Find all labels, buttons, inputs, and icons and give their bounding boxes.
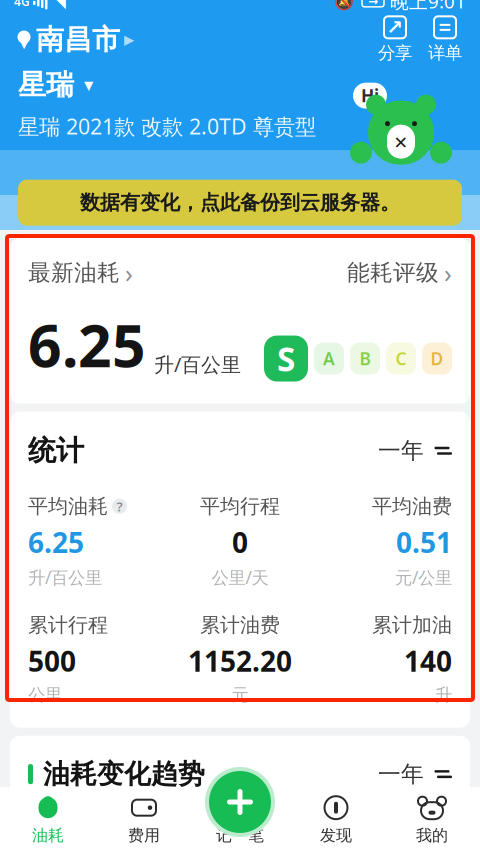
button[interactable]: ↗ [378,16,428,64]
button[interactable]: 一年 [378,760,452,788]
staticText: 平均油耗 [28,494,108,518]
staticText: 公里/天 [211,566,268,589]
staticText: 4G [14,0,30,9]
staticText: 油耗 [32,826,64,845]
staticText: ↗ [386,16,403,39]
button[interactable]: 星瑞 [18,68,93,102]
staticText: 1152.20 [188,642,292,679]
button[interactable]: 最新油耗 [28,256,133,290]
staticText: 详单 [428,42,462,64]
staticText: 星瑞 [18,68,74,102]
button[interactable]: 发现 [288,789,384,851]
button[interactable]: 我的 [384,789,480,851]
staticText: 0.51 [396,523,452,561]
staticText: 记一笔 [216,826,264,845]
staticText: 统计 [28,433,84,468]
staticText: 数据有变化，点此备份到云服务器。 [80,190,400,215]
staticText: 一年 [378,760,424,788]
staticText: B [359,347,370,370]
staticText: 累计行程 [28,613,108,637]
staticText: 500 [28,642,76,679]
staticText: Hi [361,84,379,107]
staticText: 发现 [320,826,352,845]
staticText: 140 [404,642,452,679]
staticText: ▶ [124,32,134,47]
button[interactable]: 费用 [96,789,192,851]
staticText: 油耗变化趋势 [43,758,205,790]
button[interactable]: 记一笔 [205,767,275,837]
staticText: 最新油耗 [28,259,120,287]
staticText: 6.25 [28,523,84,561]
staticText: S [277,336,295,381]
staticText: 一年 [378,437,424,465]
staticText: → [368,0,378,8]
staticText: › [125,256,133,290]
staticText: 累计油费 [200,613,280,637]
staticText: 费用 [128,826,160,845]
staticText: 公里 [28,684,62,706]
staticText: 元/公里 [395,566,452,589]
staticText: 6.25 [28,306,146,383]
button[interactable]: 一年 [378,437,452,465]
staticText: C [395,347,406,370]
button[interactable]: 油耗 [0,789,96,851]
staticText: 我的 [416,826,448,845]
staticText: 分享 [378,42,412,64]
staticText: 0 [232,523,248,561]
staticText: 元 [231,684,248,706]
staticText: ? [116,497,122,515]
staticText: ▾ [19,31,29,54]
staticText: 南昌市 [36,22,120,57]
staticText: 平均行程 [200,494,280,518]
button[interactable]: 详单 [428,16,480,64]
staticText: 累计加油 [372,613,452,637]
staticText: 平均油费 [372,494,452,518]
staticText: A [323,347,335,370]
staticText: 星瑞 2021款 改款 2.0TD 尊贵型 [18,112,316,140]
staticText: 晚上9:01 [390,0,466,14]
button[interactable]: 数据有变化，点此备份到云服务器。 [18,180,462,226]
button[interactable]: 能耗评级 [347,256,452,290]
staticText: › [444,256,452,290]
staticText: ✕ [393,133,408,152]
staticText: 能耗评级 [347,259,439,287]
staticText: 升 [435,684,452,706]
staticText: 升/百公里 [28,566,102,589]
staticText: D [430,347,443,370]
button[interactable]: ▾ [0,16,134,57]
staticText: 升/百公里 [154,351,241,378]
staticText: ◥ [52,0,65,11]
staticText: ▾ [84,74,93,95]
staticText: 🔕 [334,0,354,10]
